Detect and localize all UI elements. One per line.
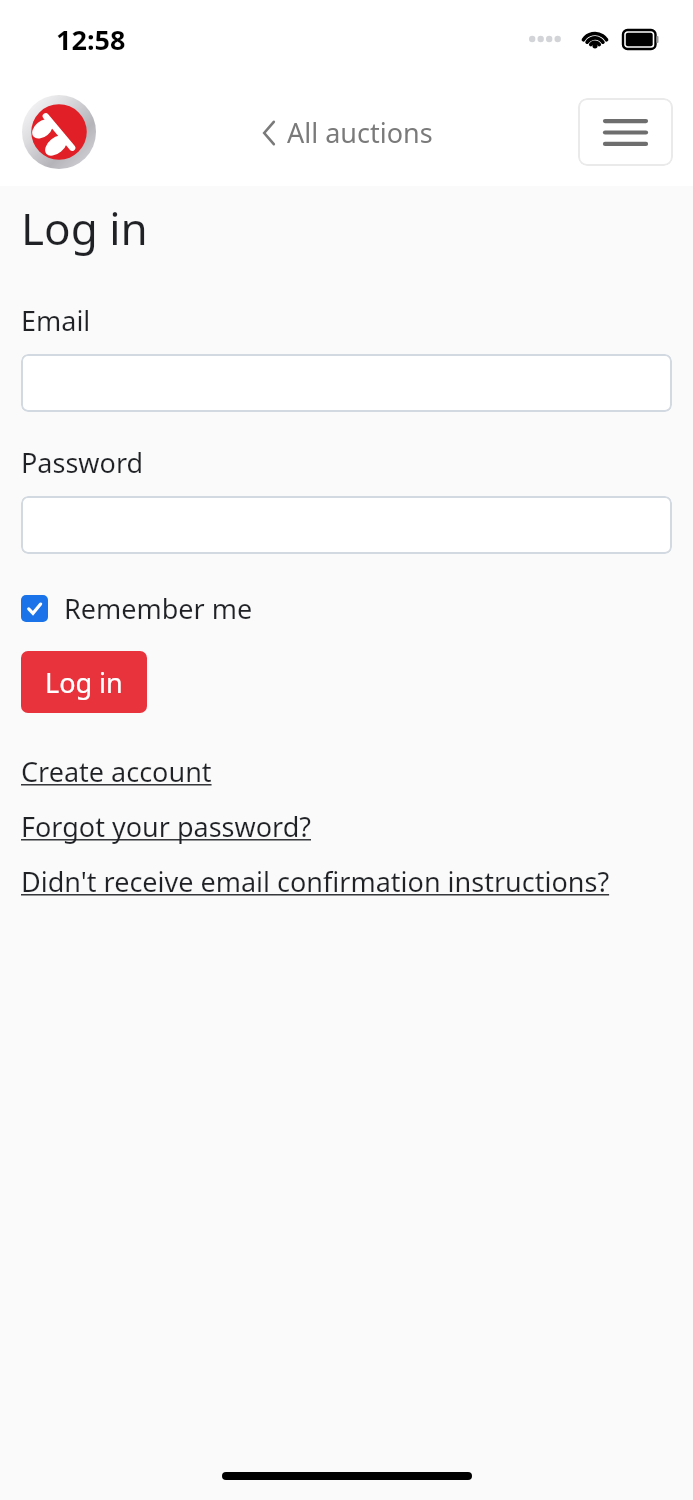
button[interactable] xyxy=(21,354,672,412)
staticText: Remember me xyxy=(64,590,253,627)
staticText: Email xyxy=(21,302,91,339)
button[interactable]: Create account xyxy=(21,753,212,790)
staticText: Log in xyxy=(45,664,123,701)
staticText: Create account xyxy=(21,753,212,790)
staticText: Password xyxy=(21,444,144,481)
button[interactable]: Didn't receive email confirmation instru… xyxy=(21,863,610,900)
button[interactable]: Forgot your password? xyxy=(21,808,312,845)
button[interactable] xyxy=(21,496,672,554)
staticText: Didn't receive email confirmation instru… xyxy=(21,863,610,900)
staticText: Forgot your password? xyxy=(21,808,312,845)
button[interactable]: Remember me xyxy=(21,590,253,627)
staticText: All auctions xyxy=(287,114,433,151)
button[interactable]: Home xyxy=(22,95,96,169)
button[interactable]: Log in xyxy=(21,651,147,713)
staticText: 12:58 xyxy=(56,21,126,58)
button[interactable]: All auctions xyxy=(253,108,441,157)
button[interactable]: Menu xyxy=(578,98,673,166)
staticText: Log in xyxy=(21,198,148,258)
